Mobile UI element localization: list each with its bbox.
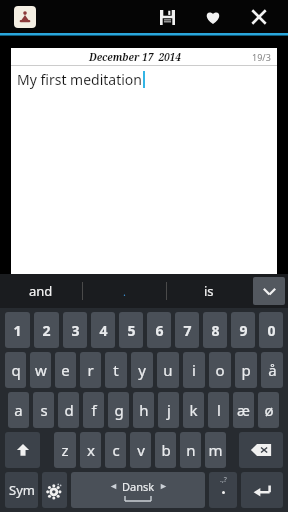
staticText: Dansk [122, 479, 155, 494]
button[interactable]: ø [258, 392, 279, 428]
button[interactable]: h [133, 392, 154, 428]
button[interactable]: m [205, 432, 226, 468]
staticText: q [11, 360, 21, 380]
button[interactable]: p [235, 352, 257, 388]
staticText: b [161, 440, 171, 460]
staticText: t [113, 360, 119, 380]
button[interactable]: 5 [119, 312, 143, 348]
button[interactable]: o [209, 352, 231, 388]
button[interactable]: Close [244, 2, 274, 32]
staticText: x [87, 440, 95, 460]
button[interactable]: 7 [175, 312, 199, 348]
staticText: i [192, 360, 196, 380]
button[interactable]: j [158, 392, 179, 428]
button[interactable]: t [105, 352, 127, 388]
button[interactable]: 2 [34, 312, 59, 348]
staticText: 19/3 [252, 51, 271, 63]
button[interactable]: Shift [5, 432, 40, 468]
staticText: z [61, 440, 69, 460]
button[interactable]: k [183, 392, 204, 428]
button[interactable]: 8 [203, 312, 227, 348]
staticText: k [189, 400, 198, 420]
staticText: My first meditation [17, 70, 142, 89]
button[interactable]: n [180, 432, 201, 468]
staticText: r [87, 360, 94, 380]
button[interactable]: g [108, 392, 129, 428]
staticText: l [217, 400, 221, 420]
staticText: 2 [42, 321, 51, 340]
button[interactable]: .,? [209, 472, 237, 508]
staticText: Sym [9, 481, 35, 499]
staticText: n [186, 440, 196, 460]
button[interactable]: f [83, 392, 104, 428]
button[interactable]: Backspace [239, 432, 283, 468]
other: Shift [15, 442, 31, 458]
button[interactable]: u [157, 352, 179, 388]
staticText: December 17 2014 [89, 50, 181, 64]
staticText: 8 [211, 321, 220, 340]
staticText: f [91, 400, 97, 420]
button[interactable]: x [80, 432, 101, 468]
button[interactable]: l [208, 392, 229, 428]
button[interactable]: 3 [63, 312, 87, 348]
staticText: 3 [71, 321, 80, 340]
other: Enter [252, 483, 272, 498]
staticText: and [29, 282, 53, 300]
button[interactable]: æ [233, 392, 254, 428]
button[interactable]: and [0, 274, 82, 308]
other: Backspace [250, 443, 272, 457]
staticText: æ [237, 400, 250, 420]
button[interactable]: Dansk [71, 472, 205, 508]
button[interactable]: a [8, 392, 29, 428]
staticText: 6 [155, 321, 164, 340]
staticText: 0 [267, 321, 276, 340]
button[interactable]: y [131, 352, 153, 388]
staticText: s [40, 400, 48, 420]
staticText: v [137, 440, 145, 460]
button[interactable]: Hide suggestions [253, 277, 285, 305]
button[interactable]: App icon [14, 6, 36, 28]
button[interactable]: December 17 2014 [11, 48, 277, 274]
button[interactable]: 4 [91, 312, 115, 348]
button[interactable]: 1 [5, 312, 30, 348]
staticText: j [167, 400, 171, 420]
button[interactable]: 6 [147, 312, 171, 348]
staticText: e [61, 360, 70, 380]
staticText: 4 [99, 321, 108, 340]
staticText: p [241, 360, 251, 380]
button[interactable]: 9 [231, 312, 255, 348]
button[interactable]: Favourite [198, 2, 228, 32]
button[interactable]: Input settings [42, 472, 67, 508]
button[interactable]: w [30, 352, 51, 388]
staticText: g [114, 400, 124, 420]
button[interactable]: . [83, 274, 166, 308]
other: Input settings [46, 482, 63, 499]
staticText: y [138, 360, 146, 380]
button[interactable]: Enter [241, 472, 283, 508]
button[interactable]: e [55, 352, 76, 388]
button[interactable]: v [130, 432, 151, 468]
staticText: .,? [220, 475, 227, 485]
staticText: 5 [127, 321, 136, 340]
staticText: c [112, 440, 120, 460]
button[interactable]: s [33, 392, 54, 428]
button[interactable]: is [167, 274, 250, 308]
staticText: . [123, 284, 126, 299]
button[interactable]: 0 [259, 312, 283, 348]
button[interactable]: c [105, 432, 126, 468]
staticText: o [215, 360, 225, 380]
button[interactable]: d [58, 392, 79, 428]
staticText: a [14, 400, 23, 420]
button[interactable]: z [54, 432, 76, 468]
staticText: 7 [183, 321, 192, 340]
button[interactable]: Sym [5, 472, 38, 508]
button[interactable]: b [155, 432, 176, 468]
staticText: u [163, 360, 173, 380]
button[interactable]: Save [152, 2, 182, 32]
button[interactable]: i [183, 352, 205, 388]
button[interactable]: å [261, 352, 283, 388]
button[interactable]: r [80, 352, 101, 388]
staticText: 1 [13, 321, 22, 340]
button[interactable]: q [5, 352, 26, 388]
staticText: w [35, 360, 47, 380]
